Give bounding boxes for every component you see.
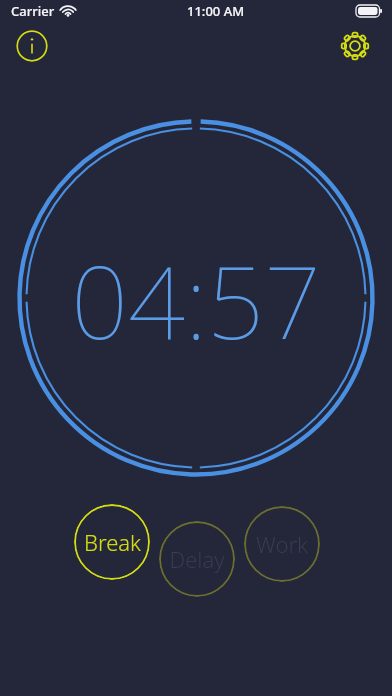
staticText: Break — [84, 527, 141, 557]
button[interactable]: Break — [74, 504, 150, 580]
button[interactable]: Info — [16, 30, 48, 62]
button[interactable]: Settings — [338, 29, 372, 63]
staticText: Carrier — [11, 2, 55, 20]
staticText: 04:57 — [71, 232, 321, 364]
button[interactable]: Work — [244, 506, 320, 582]
staticText: 11:00 AM — [187, 2, 245, 20]
button[interactable]: Delay — [159, 521, 235, 597]
staticText: Work — [256, 529, 308, 559]
staticText: Delay — [169, 544, 225, 574]
